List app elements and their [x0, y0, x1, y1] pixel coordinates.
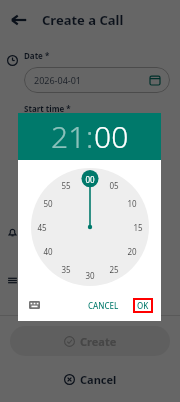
staticText: 55	[61, 180, 71, 191]
staticText: 45	[37, 222, 47, 233]
staticText: 20	[127, 246, 137, 257]
staticText: :	[86, 116, 94, 157]
staticText: 30	[85, 270, 95, 281]
button[interactable]: Recent	[2, 50, 22, 70]
button[interactable]: Create	[10, 326, 170, 356]
staticText: Cancel	[80, 372, 117, 387]
staticText: Start time *	[24, 103, 71, 114]
staticText: CANCEL	[88, 300, 119, 311]
button[interactable]: Notifications	[2, 222, 22, 242]
button[interactable]: Menu	[2, 270, 22, 290]
staticText: 05	[109, 180, 119, 191]
button[interactable]: Back	[8, 9, 30, 31]
staticText: 40	[43, 246, 53, 257]
staticText: 25	[109, 264, 119, 275]
staticText: Create	[80, 334, 117, 349]
button[interactable]: OK	[133, 298, 153, 313]
staticText: 10	[127, 198, 137, 209]
staticText: 35	[61, 264, 71, 275]
staticText: 00	[85, 174, 95, 185]
staticText: OK	[137, 300, 149, 311]
button[interactable]: 2026-04-01	[24, 67, 170, 93]
button[interactable]: 00	[94, 116, 129, 157]
staticText: Create a Call	[42, 11, 124, 29]
staticText: 50	[43, 198, 53, 209]
button[interactable]: Cancel	[0, 366, 180, 392]
staticText: Date *	[24, 50, 50, 61]
button[interactable]: 21	[51, 116, 86, 157]
button[interactable]: CANCEL	[84, 298, 123, 313]
staticText: 2026-04-01	[34, 74, 81, 86]
staticText: 15	[133, 222, 143, 233]
button[interactable]: Switch to text input	[26, 297, 42, 313]
